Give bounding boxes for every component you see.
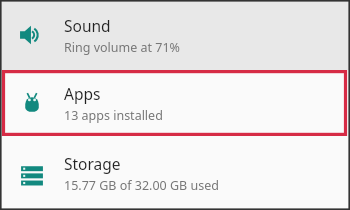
other: Sound (19, 22, 45, 48)
other: Storage (19, 160, 45, 186)
button[interactable]: Storage (0, 136, 350, 210)
other: Apps (19, 90, 45, 116)
button[interactable]: Apps (0, 70, 350, 136)
staticText: Ring volume at 71% (64, 39, 180, 56)
staticText: 15.77 GB of 32.00 GB used (64, 177, 219, 194)
staticText: 13 apps installed (64, 107, 163, 124)
staticText: Storage (64, 153, 121, 174)
staticText: Apps (64, 83, 101, 104)
staticText: Sound (64, 15, 111, 36)
button[interactable]: Sound (0, 0, 350, 70)
